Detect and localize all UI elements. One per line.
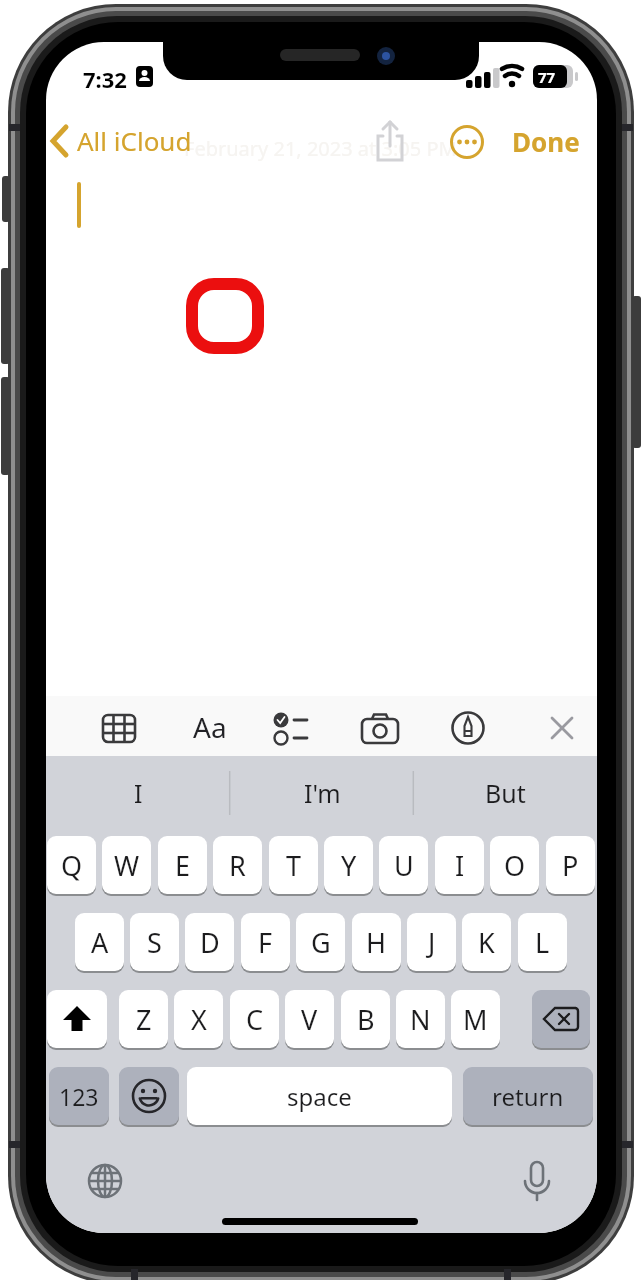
button[interactable]: S (130, 913, 179, 971)
staticText: V (301, 1001, 318, 1038)
button[interactable] (85, 1161, 125, 1201)
staticText: Q (61, 847, 83, 884)
button[interactable] (47, 990, 107, 1048)
button[interactable]: All iCloud (50, 123, 192, 158)
button[interactable] (372, 118, 408, 164)
staticText: F (258, 924, 273, 961)
button[interactable]: H (352, 913, 401, 971)
button[interactable]: N (396, 990, 445, 1048)
staticText: February 21, 2023 at 3:05 PM (184, 135, 457, 162)
staticText: T (286, 847, 302, 884)
button[interactable] (101, 710, 137, 746)
button[interactable]: A (75, 913, 124, 971)
staticText: H (366, 924, 387, 961)
button[interactable]: E (158, 836, 207, 894)
button[interactable]: space (187, 1067, 452, 1125)
button[interactable]: D (185, 913, 234, 971)
button[interactable]: Z (119, 990, 168, 1048)
staticText: return (492, 1080, 564, 1113)
button[interactable]: V (285, 990, 334, 1048)
staticText: I'm (304, 776, 341, 810)
staticText: E (175, 847, 191, 884)
button[interactable]: U (379, 836, 428, 894)
button[interactable]: P (546, 836, 595, 894)
staticText: O (504, 847, 526, 884)
button[interactable]: T (269, 836, 318, 894)
staticText: C (246, 1001, 264, 1038)
button[interactable]: G (296, 913, 345, 971)
button[interactable]: Y (324, 836, 373, 894)
button[interactable]: M (451, 990, 500, 1048)
button[interactable]: But (413, 762, 597, 824)
button[interactable]: 123 (49, 1067, 109, 1125)
staticText: U (394, 847, 414, 884)
staticText: J (428, 924, 436, 961)
button[interactable]: Aa (190, 708, 230, 744)
button[interactable]: J (407, 913, 456, 971)
staticText: But (485, 776, 526, 810)
staticText: A (91, 924, 109, 961)
staticText: L (535, 924, 550, 961)
staticText: 7:32 (83, 64, 127, 94)
button[interactable]: X (174, 990, 223, 1048)
staticText: D (200, 924, 220, 961)
staticText: G (311, 924, 331, 961)
staticText: 77 (538, 67, 556, 87)
staticText: R (229, 847, 246, 884)
staticText: Aa (193, 708, 227, 744)
button[interactable] (119, 1067, 179, 1125)
staticText: Done (512, 124, 580, 159)
staticText: P (562, 847, 579, 884)
button[interactable]: L (518, 913, 567, 971)
button[interactable] (450, 125, 484, 159)
button[interactable]: O (490, 836, 539, 894)
staticText: W (114, 847, 140, 884)
staticText: B (357, 1001, 375, 1038)
button[interactable]: F (241, 913, 290, 971)
button[interactable]: R (213, 836, 262, 894)
button[interactable]: C (230, 990, 279, 1048)
button[interactable] (272, 710, 308, 746)
staticText: space (287, 1080, 352, 1113)
staticText: 123 (59, 1081, 99, 1112)
staticText: Z (136, 1001, 152, 1038)
button[interactable] (450, 710, 486, 746)
button[interactable]: W (102, 836, 151, 894)
button[interactable]: Done (512, 124, 580, 159)
button[interactable]: I (46, 762, 230, 824)
button[interactable] (532, 990, 590, 1048)
button[interactable] (546, 712, 582, 748)
staticText: I (134, 776, 143, 810)
button[interactable]: I'm (230, 762, 414, 824)
button[interactable]: K (462, 913, 511, 971)
staticText: M (463, 1001, 488, 1038)
button[interactable]: B (341, 990, 390, 1048)
button[interactable]: return (463, 1067, 593, 1125)
button[interactable] (361, 710, 397, 746)
staticText: K (478, 924, 495, 961)
button[interactable]: I (435, 836, 484, 894)
staticText: N (410, 1001, 431, 1038)
staticText: Y (341, 847, 357, 884)
staticText: I (455, 847, 465, 884)
staticText: S (147, 924, 162, 961)
button[interactable] (517, 1161, 557, 1201)
button[interactable]: Q (47, 836, 96, 894)
staticText: X (191, 1001, 207, 1038)
staticText: All iCloud (77, 123, 192, 158)
